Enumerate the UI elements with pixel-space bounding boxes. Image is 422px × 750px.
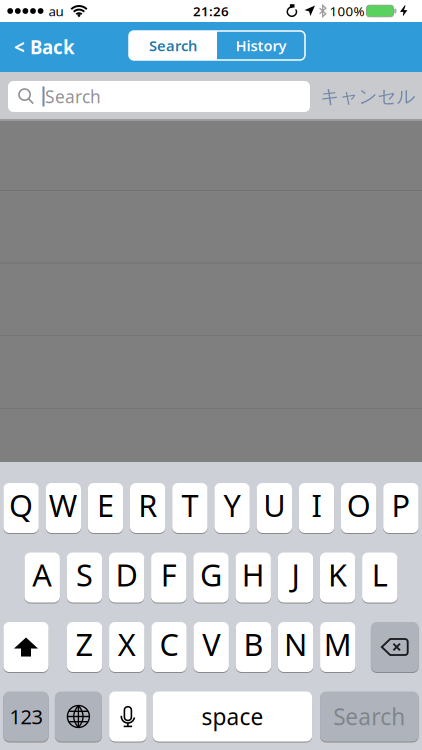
- button[interactable]: Q: [3, 482, 39, 533]
- staticText: 100%: [329, 2, 364, 20]
- button[interactable]: W: [46, 482, 81, 533]
- button[interactable]: A: [24, 552, 60, 603]
- button[interactable]: R: [130, 482, 165, 533]
- staticText: キャンセル: [320, 85, 415, 108]
- button[interactable]: V: [193, 621, 229, 672]
- staticText: G: [200, 554, 222, 595]
- staticText: O: [347, 485, 371, 525]
- staticText: S: [76, 554, 93, 595]
- button[interactable]: M: [320, 621, 355, 672]
- button[interactable]: キャンセル: [308, 81, 422, 112]
- staticText: F: [161, 554, 177, 595]
- button[interactable]: K: [320, 552, 355, 603]
- button[interactable]: U: [257, 482, 292, 533]
- button[interactable]: P: [383, 482, 419, 533]
- button[interactable]: space: [153, 691, 312, 742]
- staticText: Search: [149, 36, 197, 55]
- staticText: J: [291, 554, 299, 595]
- staticText: R: [138, 485, 157, 525]
- staticText: C: [159, 624, 178, 664]
- staticText: History: [235, 36, 286, 55]
- button[interactable]: B: [236, 621, 271, 672]
- button[interactable]: N: [278, 621, 313, 672]
- button[interactable]: L: [362, 552, 397, 603]
- button[interactable]: F: [151, 552, 186, 603]
- staticText: T: [181, 485, 198, 525]
- button[interactable]: Next keyboard: [55, 691, 102, 742]
- button[interactable]: Delete: [371, 621, 419, 672]
- button[interactable]: T: [172, 482, 208, 533]
- button[interactable]: X: [109, 621, 144, 672]
- staticText: I: [311, 485, 321, 525]
- staticText: space: [201, 701, 263, 731]
- staticText: L: [372, 554, 388, 595]
- button[interactable]: History: [217, 31, 305, 60]
- button[interactable]: O: [341, 482, 376, 533]
- button[interactable]: < Back: [0, 30, 89, 64]
- staticText: Search: [333, 701, 405, 731]
- staticText: au: [48, 2, 63, 20]
- staticText: Q: [9, 485, 33, 525]
- staticText: A: [32, 554, 52, 595]
- staticText: < Back: [14, 35, 75, 59]
- button[interactable]: Search: [129, 31, 217, 60]
- staticText: U: [263, 485, 285, 525]
- button[interactable]: C: [151, 621, 187, 672]
- button[interactable]: J: [278, 552, 313, 603]
- staticText: K: [328, 554, 347, 595]
- button[interactable]: G: [193, 552, 229, 603]
- button[interactable]: H: [235, 552, 271, 603]
- button[interactable]: S: [67, 552, 102, 603]
- button[interactable]: Y: [214, 482, 250, 533]
- button[interactable]: E: [88, 482, 123, 533]
- staticText: P: [391, 485, 410, 525]
- staticText: Y: [224, 485, 241, 525]
- button[interactable]: Dictate: [109, 691, 147, 742]
- staticText: W: [49, 485, 78, 525]
- staticText: Search: [45, 85, 101, 108]
- staticText: M: [324, 624, 352, 664]
- staticText: D: [116, 554, 138, 595]
- staticText: H: [242, 554, 265, 595]
- button[interactable]: Shift: [3, 621, 49, 672]
- button[interactable]: Search: [8, 81, 310, 112]
- staticText: X: [118, 624, 136, 664]
- staticText: Z: [76, 624, 94, 664]
- staticText: 123: [9, 703, 42, 730]
- staticText: B: [243, 624, 263, 664]
- button[interactable]: Z: [67, 621, 102, 672]
- button[interactable]: 123: [3, 691, 49, 742]
- button[interactable]: D: [109, 552, 144, 603]
- button[interactable]: I: [299, 482, 334, 533]
- staticText: 21:26: [193, 2, 229, 20]
- staticText: N: [284, 624, 307, 664]
- staticText: V: [202, 624, 220, 664]
- staticText: E: [97, 485, 114, 525]
- button[interactable]: Search: [320, 691, 419, 742]
